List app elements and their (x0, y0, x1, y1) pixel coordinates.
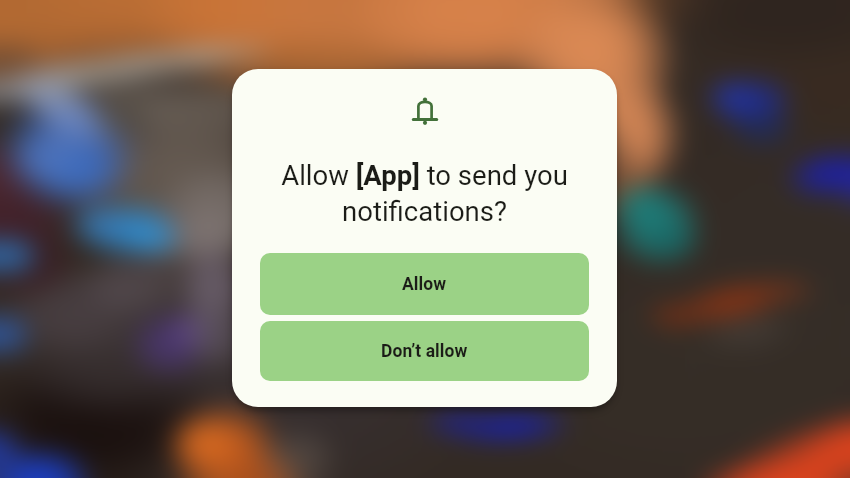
staticText: Allow [App] to send you notifications? (248, 159, 601, 228)
button[interactable]: Don’t allow (260, 321, 589, 381)
staticText: Don’t allow (381, 341, 468, 362)
button[interactable]: Allow (260, 253, 589, 315)
staticText: Allow (402, 274, 447, 295)
